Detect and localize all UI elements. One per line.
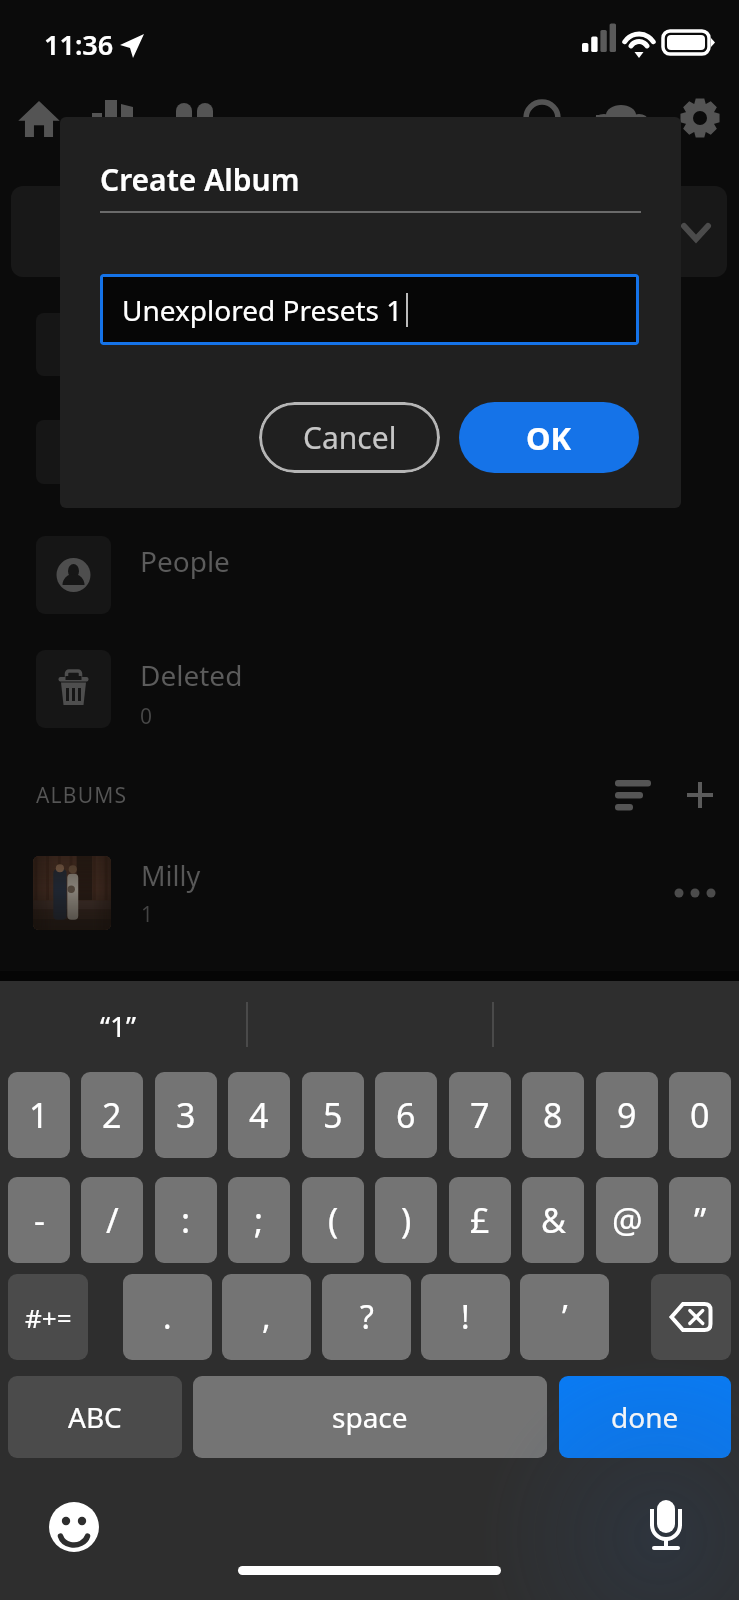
staticText: ”	[694, 1197, 707, 1243]
button[interactable]: More options	[665, 863, 725, 923]
button[interactable]: /	[81, 1177, 143, 1263]
staticText: OK	[526, 417, 572, 459]
button[interactable]: 6	[375, 1072, 437, 1158]
button[interactable]: !	[421, 1274, 510, 1360]
staticText: 2	[102, 1092, 122, 1138]
staticText: 0	[140, 702, 153, 731]
button[interactable]: space	[193, 1376, 547, 1458]
button[interactable]: 4	[228, 1072, 290, 1158]
button[interactable]: ;	[228, 1177, 290, 1263]
staticText: 3	[176, 1092, 196, 1138]
button[interactable]: (	[302, 1177, 364, 1263]
button[interactable]: 7	[449, 1072, 511, 1158]
button[interactable]: #+=	[8, 1274, 88, 1360]
staticText: space	[332, 1398, 408, 1436]
staticText: 8	[543, 1092, 563, 1138]
button[interactable]: Cancel	[259, 402, 440, 473]
button[interactable]: ,	[222, 1274, 311, 1360]
staticText: 1	[29, 1092, 49, 1138]
button[interactable]: Deleted	[0, 650, 739, 728]
button[interactable]: 8	[522, 1072, 584, 1158]
staticText: ABC	[68, 1398, 122, 1436]
staticText: 11:36	[44, 26, 114, 63]
staticText: (	[328, 1197, 339, 1243]
staticText: ?	[360, 1295, 374, 1339]
button[interactable]: :	[155, 1177, 217, 1263]
button[interactable]: Backspace	[651, 1274, 731, 1360]
staticText: ,	[262, 1295, 271, 1339]
staticText: )	[401, 1197, 412, 1243]
button[interactable]: &	[522, 1177, 584, 1263]
staticText: -	[34, 1197, 45, 1243]
button[interactable]: People	[0, 536, 739, 614]
staticText: ALBUMS	[36, 781, 128, 810]
button[interactable]: 9	[596, 1072, 658, 1158]
button[interactable]: £	[449, 1177, 511, 1263]
button[interactable]: ABC	[8, 1376, 182, 1458]
button[interactable]: 5	[302, 1072, 364, 1158]
staticText: !	[461, 1295, 470, 1339]
button[interactable]: Add album	[671, 766, 729, 824]
staticText: Unexplored Presets 1	[122, 291, 403, 329]
staticText: 9	[617, 1092, 637, 1138]
staticText: 4	[249, 1092, 269, 1138]
button[interactable]: Sort	[600, 766, 666, 824]
staticText: @	[612, 1197, 643, 1243]
button[interactable]: ?	[322, 1274, 411, 1360]
staticText: #+=	[25, 1300, 72, 1335]
staticText: Cancel	[303, 417, 397, 458]
staticText: :	[181, 1197, 191, 1243]
button[interactable]: @	[596, 1177, 658, 1263]
staticText: ’	[562, 1295, 568, 1339]
staticText: ;	[254, 1197, 264, 1243]
button[interactable]: )	[375, 1177, 437, 1263]
button[interactable]: 3	[155, 1072, 217, 1158]
staticText: .	[163, 1295, 172, 1339]
button[interactable]: OK	[459, 402, 639, 473]
button[interactable]: ’	[520, 1274, 609, 1360]
button[interactable]: ”	[669, 1177, 731, 1263]
staticText: Deleted	[140, 656, 243, 694]
button[interactable]: .	[123, 1274, 212, 1360]
staticText: People	[140, 542, 230, 580]
button[interactable]: -	[8, 1177, 70, 1263]
staticText: &	[541, 1197, 566, 1243]
staticText: £	[470, 1197, 490, 1243]
staticText: “1”	[100, 1007, 137, 1045]
button[interactable]: done	[559, 1376, 731, 1458]
staticText: /	[106, 1197, 119, 1243]
button[interactable]: 2	[81, 1072, 143, 1158]
staticText: 0	[690, 1092, 710, 1138]
staticText: Milly	[141, 857, 201, 894]
staticText: 1	[141, 900, 154, 929]
staticText: done	[611, 1398, 679, 1436]
staticText: 7	[470, 1092, 490, 1138]
staticText: 5	[323, 1092, 343, 1138]
staticText: 6	[396, 1092, 416, 1138]
staticText: Create Album	[100, 159, 300, 200]
button[interactable]: 0	[669, 1072, 731, 1158]
button[interactable]: 1	[8, 1072, 70, 1158]
button[interactable]: Milly	[0, 845, 739, 940]
